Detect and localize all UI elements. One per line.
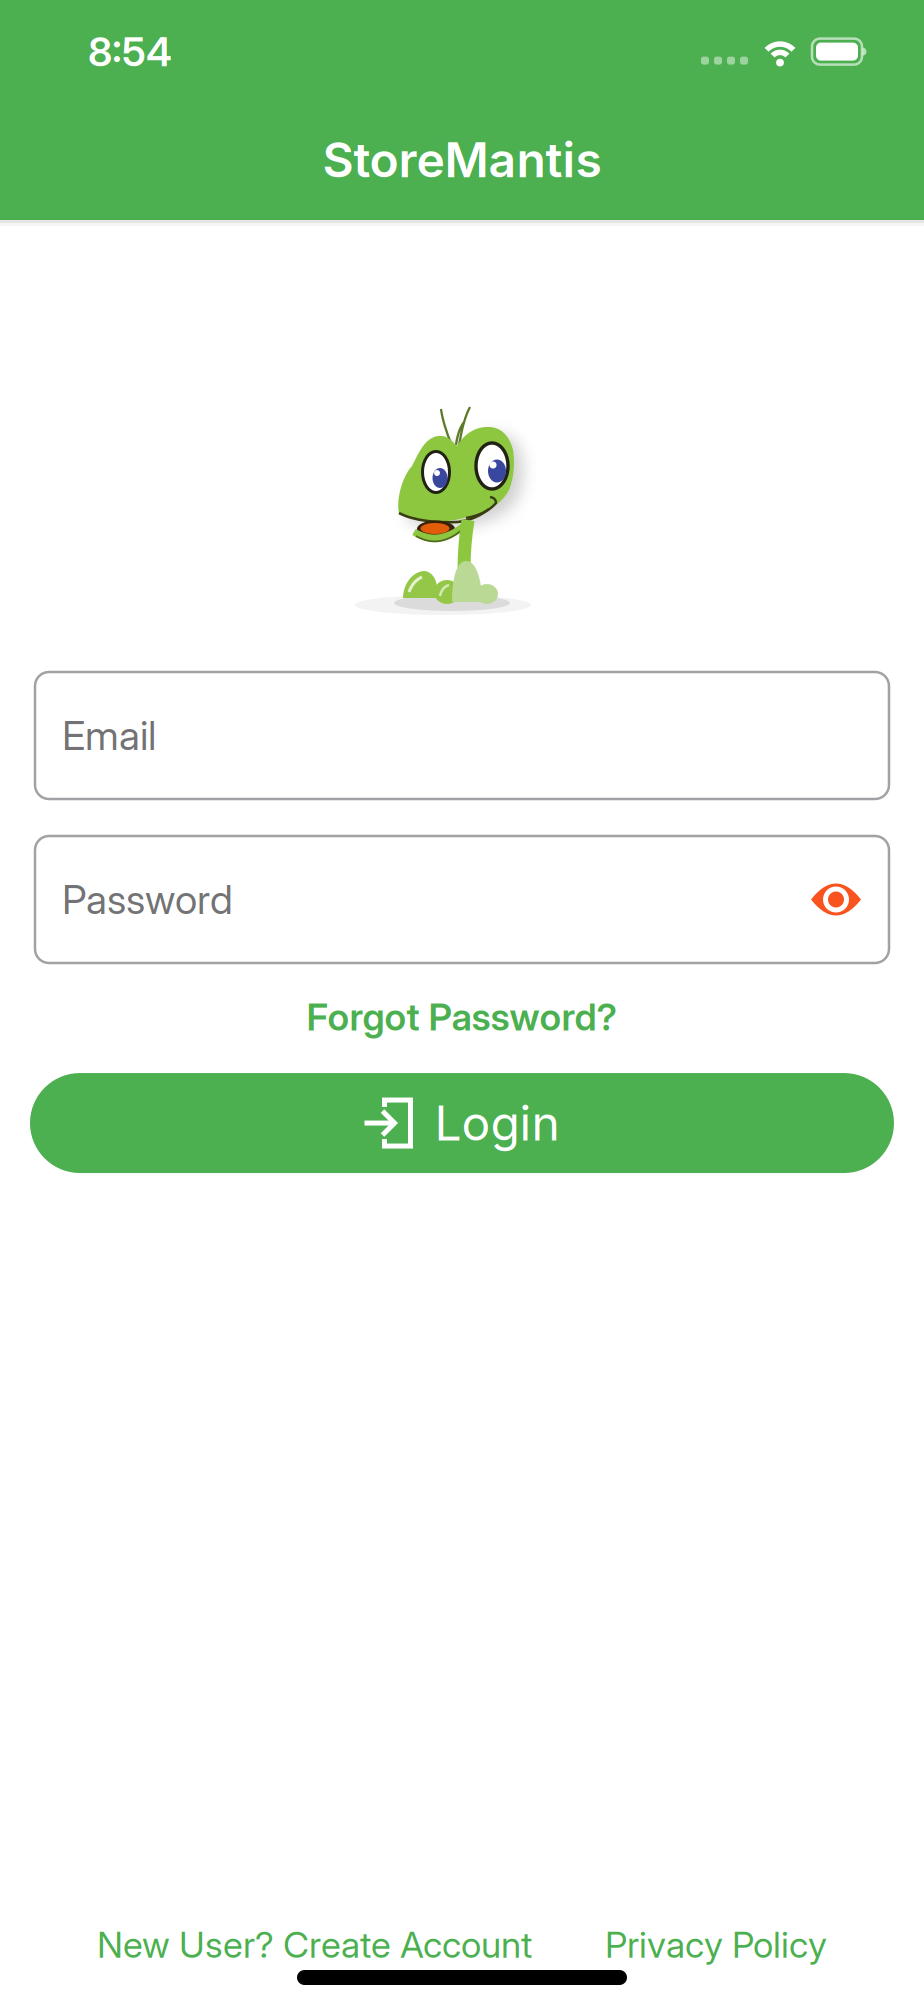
button[interactable]: Email [35, 672, 889, 799]
staticText: Privacy Policy [605, 1923, 827, 1966]
button[interactable]: Show password [811, 882, 861, 916]
staticText: StoreMantis [322, 131, 601, 188]
staticText: New User? Create Account [97, 1923, 532, 1966]
button[interactable]: Login [30, 1073, 894, 1173]
staticText: Login [434, 1095, 559, 1151]
staticText: Email [62, 712, 156, 759]
button[interactable]: Forgot Password? [306, 995, 617, 1039]
button[interactable]: New User? Create Account [97, 1923, 532, 1966]
staticText: Password [62, 876, 233, 923]
button[interactable]: Privacy Policy [605, 1923, 827, 1966]
button[interactable]: Password [35, 836, 889, 963]
staticText: Forgot Password? [306, 995, 617, 1039]
staticText: 8:54 [88, 28, 172, 75]
